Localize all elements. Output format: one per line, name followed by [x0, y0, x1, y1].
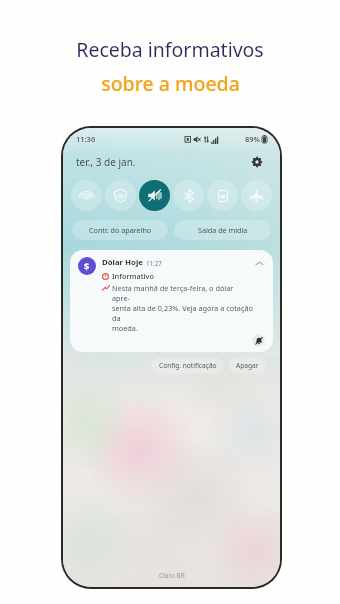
staticText: sobre a moeda	[101, 70, 240, 97]
staticText: $	[84, 260, 90, 272]
staticText: Saída de mídia	[198, 225, 248, 235]
button[interactable]: Config. notificação	[152, 358, 224, 373]
staticText: Apagar	[236, 361, 259, 370]
button[interactable]: $	[70, 250, 273, 352]
staticText: 11:27	[146, 259, 162, 267]
button[interactable]: Wi-Fi	[71, 180, 102, 211]
button[interactable]: Apagar	[229, 358, 266, 373]
button[interactable]: Settings	[247, 152, 267, 172]
staticText: Contr. do aparelho	[89, 225, 152, 235]
button[interactable]: Airplane mode	[241, 180, 272, 211]
staticText: Nesta manhã de terça-feira, o dólar apre…	[112, 283, 253, 333]
staticText: 89%	[245, 134, 260, 144]
button[interactable]: Bluetooth	[173, 180, 204, 211]
button[interactable]: Sound mute	[139, 180, 170, 211]
button[interactable]: Silence notification	[252, 334, 265, 347]
button[interactable]: Collapse	[253, 257, 265, 269]
button[interactable]: Contr. do aparelho	[72, 220, 168, 240]
staticText: Claro BR	[159, 571, 185, 580]
staticText: 11:36	[76, 134, 96, 144]
staticText: Dólar Hoje	[102, 257, 143, 268]
button[interactable]: SIM card	[207, 180, 238, 211]
staticText: Informativo	[112, 271, 154, 281]
button[interactable]: Secure Wi-Fi	[105, 180, 136, 211]
staticText: Receba informativos	[76, 36, 264, 63]
staticText: Config. notificação	[159, 361, 217, 370]
button[interactable]: Saída de mídia	[174, 220, 271, 240]
staticText: ter., 3 de jan.	[76, 155, 136, 169]
